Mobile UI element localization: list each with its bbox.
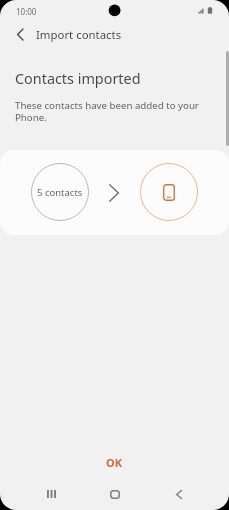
- staticText: Import contacts: [36, 27, 122, 43]
- button[interactable]: Home: [95, 474, 135, 510]
- staticText: Contacts imported: [15, 69, 141, 89]
- staticText: 10:00: [16, 6, 37, 17]
- button[interactable]: Recents: [31, 474, 71, 510]
- button[interactable]: Back: [10, 24, 30, 44]
- button[interactable]: Back: [159, 474, 199, 510]
- staticText: OK: [106, 455, 123, 470]
- button[interactable]: 5 contacts: [31, 163, 89, 221]
- staticText: 5 contacts: [37, 186, 83, 199]
- staticText: These contacts have been added to your P…: [15, 99, 199, 124]
- button[interactable]: OK: [84, 447, 145, 477]
- button[interactable]: Phone: [140, 163, 198, 221]
